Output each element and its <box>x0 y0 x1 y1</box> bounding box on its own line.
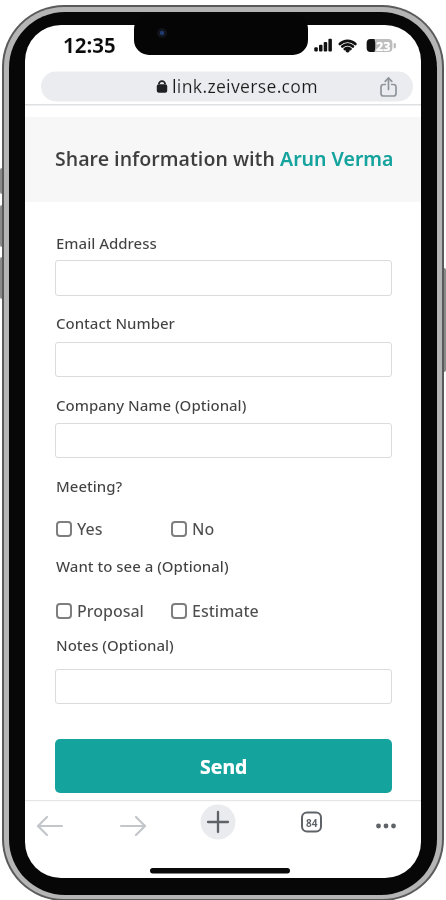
staticText: 12:35 <box>63 31 116 59</box>
button[interactable]: Send <box>55 739 392 793</box>
button[interactable]: Proposal <box>56 600 144 622</box>
staticText: Share information with Arun Verma <box>55 145 394 172</box>
button[interactable] <box>119 810 151 842</box>
button[interactable] <box>375 72 403 100</box>
button[interactable]: No <box>171 518 215 540</box>
button[interactable]: Estimate <box>171 600 259 622</box>
staticText: 84 <box>306 816 318 830</box>
staticText: No <box>192 518 215 540</box>
button[interactable] <box>55 260 392 296</box>
button[interactable] <box>370 810 402 842</box>
staticText: Want to see a (Optional) <box>56 556 229 576</box>
button[interactable] <box>36 810 68 842</box>
staticText: Meeting? <box>56 476 123 496</box>
staticText: Estimate <box>192 600 259 622</box>
button[interactable] <box>200 804 236 840</box>
staticText: Yes <box>77 518 103 540</box>
button[interactable]: Yes <box>56 518 103 540</box>
button[interactable] <box>55 669 392 704</box>
staticText: Email Address <box>56 233 157 253</box>
button[interactable]: link.zeiverse.com <box>41 72 413 102</box>
staticText: link.zeiverse.com <box>172 74 318 98</box>
staticText: Proposal <box>77 600 144 622</box>
button[interactable] <box>55 342 392 377</box>
staticText: Company Name (Optional) <box>56 395 247 415</box>
staticText: Send <box>200 753 248 780</box>
button[interactable] <box>55 423 392 458</box>
staticText: Notes (Optional) <box>56 635 174 655</box>
button[interactable] <box>295 806 327 838</box>
staticText: Contact Number <box>56 313 175 333</box>
staticText: 23 <box>376 38 391 55</box>
